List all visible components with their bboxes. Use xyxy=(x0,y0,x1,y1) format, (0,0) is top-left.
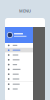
button[interactable] xyxy=(5,62,33,67)
button[interactable] xyxy=(5,67,33,72)
button[interactable] xyxy=(5,53,33,57)
button[interactable] xyxy=(5,57,33,62)
button[interactable] xyxy=(5,48,33,53)
button[interactable] xyxy=(5,87,33,91)
button[interactable] xyxy=(5,72,33,77)
staticText: MENU xyxy=(19,8,31,13)
button[interactable] xyxy=(5,82,33,87)
button[interactable] xyxy=(5,77,33,81)
button[interactable] xyxy=(5,43,33,48)
